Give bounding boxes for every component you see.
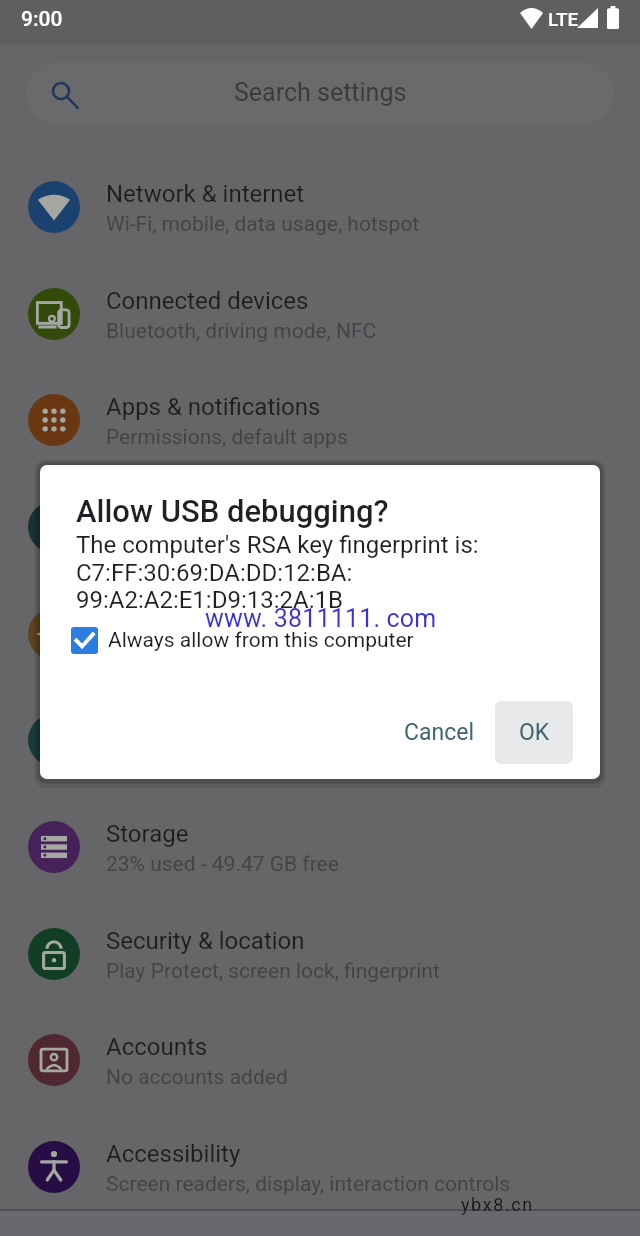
staticText: 62% - 3 hr 20 min left <box>106 532 302 557</box>
staticText: www. 3811111. com <box>205 604 437 633</box>
staticText: No accounts added <box>106 1065 288 1090</box>
button[interactable]: Accessibility <box>0 1114 640 1220</box>
other: Battery <box>607 6 619 29</box>
staticText: Storage <box>106 820 189 848</box>
button[interactable]: Always allow from this computer <box>71 623 414 657</box>
button[interactable]: Battery <box>0 474 640 580</box>
staticText: C7:FF:30:69:DA:DD:12:BA: <box>76 559 353 587</box>
staticText: Security & location <box>106 927 305 955</box>
staticText: Wi-Fi, mobile, data usage, hotspot <box>106 212 420 237</box>
other: Search <box>47 77 79 109</box>
staticText: 23% used - 49.47 GB free <box>106 852 339 877</box>
staticText: ybx8.cn <box>461 1194 534 1215</box>
staticText: Search settings <box>234 78 407 107</box>
staticText: Accounts <box>106 1033 208 1061</box>
staticText: Screen readers, display, interaction con… <box>106 1172 511 1197</box>
staticText: Connected devices <box>106 287 309 315</box>
staticText: Allow USB debugging? <box>76 493 389 529</box>
other: Mobile signal <box>577 8 598 28</box>
staticText: Bluetooth, driving mode, NFC <box>106 319 377 344</box>
button[interactable]: Search settings <box>26 62 614 124</box>
staticText: 99:A2:A2:E1:D9:13:2A:1B <box>76 586 343 614</box>
staticText: Always allow from this computer <box>108 628 414 653</box>
button[interactable]: Network & internet <box>0 154 640 260</box>
button[interactable]: Sound <box>0 687 640 793</box>
staticText: Display <box>106 607 184 635</box>
button[interactable]: Security & location <box>0 901 640 1007</box>
staticText: 9:00 <box>21 7 63 32</box>
staticText: Wallpaper, sleep, font size <box>106 639 347 664</box>
staticText: Play Protect, screen lock, fingerprint <box>106 959 440 984</box>
staticText: OK <box>519 719 550 746</box>
staticText: The computer's RSA key fingerprint is: <box>76 531 479 559</box>
staticText: Cancel <box>404 719 475 746</box>
button[interactable]: Storage <box>0 794 640 900</box>
staticText: Permissions, default apps <box>106 425 348 450</box>
button[interactable]: Connected devices <box>0 261 640 367</box>
staticText: Accessibility <box>106 1140 241 1168</box>
button[interactable]: Accounts <box>0 1007 640 1113</box>
button[interactable]: Apps & notifications <box>0 367 640 473</box>
staticText: LTE <box>548 8 579 30</box>
button[interactable]: Cancel <box>365 701 513 763</box>
staticText: Apps & notifications <box>106 393 321 421</box>
staticText: Battery <box>106 500 183 528</box>
button[interactable]: OK <box>495 701 573 764</box>
button[interactable]: Display <box>0 581 640 687</box>
other: Wi-Fi <box>519 4 544 28</box>
staticText: Network & internet <box>106 180 305 208</box>
